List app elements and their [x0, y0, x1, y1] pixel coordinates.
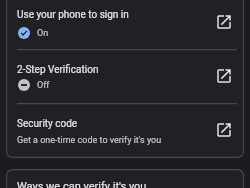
staticText: On [37, 28, 49, 39]
button[interactable]: Ways we can verify it's you [6, 169, 244, 188]
staticText: 2-Step Verification [17, 64, 99, 76]
button[interactable]: 2-Step Verification [6, 50, 244, 103]
button[interactable]: Security code [6, 104, 244, 157]
button[interactable]: Open Use your phone to sign in [204, 2, 244, 42]
button[interactable]: Use your phone to sign in [6, 0, 244, 49]
button[interactable]: Open 2-Step Verification [204, 56, 244, 96]
staticText: Ways we can verify it's you [17, 180, 147, 188]
staticText: Security code [17, 118, 78, 130]
staticText: Use your phone to sign in [17, 9, 129, 21]
button[interactable]: Open Security code [204, 110, 244, 150]
staticText: Off [37, 80, 50, 91]
staticText: Get a one-time code to verify it's you [17, 135, 162, 146]
